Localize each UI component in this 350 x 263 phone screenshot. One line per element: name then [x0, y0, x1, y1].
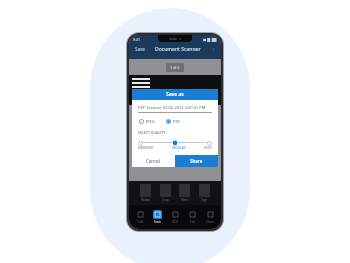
button[interactable]: Quality level: [138, 141, 143, 146]
staticText: Edit: [138, 220, 144, 224]
button[interactable]: Quality level: [207, 141, 212, 146]
button[interactable]: Crop: [159, 183, 172, 203]
button[interactable]: Scan: [151, 209, 164, 225]
staticText: JPEG: [146, 119, 155, 124]
staticText: Document Scanner: [155, 46, 201, 53]
staticText: MINIMUM: [138, 146, 153, 150]
button[interactable]: Filter: [178, 183, 191, 203]
staticText: 1 of 4: [170, 65, 180, 70]
staticText: Scan: [154, 220, 161, 224]
staticText: OCR: [172, 220, 179, 224]
button[interactable]: More options: [210, 46, 216, 52]
button[interactable]: Quality level: [172, 140, 178, 146]
staticText: Rotate: [141, 198, 151, 202]
staticText: 9:41: [133, 37, 140, 42]
staticText: REGULAR: [172, 146, 186, 150]
staticText: Crop: [162, 198, 169, 202]
staticText: SELECT QUALITY: [138, 130, 166, 135]
staticText: Save as: [166, 91, 184, 98]
staticText: Save: [135, 46, 145, 52]
staticText: Cancel: [146, 158, 161, 164]
button[interactable]: Share: [204, 209, 217, 225]
staticText: Sign: [201, 198, 208, 202]
button[interactable]: Edit: [186, 209, 199, 225]
staticText: Share: [206, 220, 215, 224]
staticText: PDF: [173, 119, 181, 124]
staticText: PDF Scanner 02-02-2023 3:50:41 PM: [138, 105, 206, 110]
button[interactable]: PDF: [165, 118, 182, 125]
button[interactable]: Save: [134, 45, 146, 53]
button[interactable]: OCR: [169, 209, 182, 225]
button[interactable]: JPEG: [138, 118, 156, 125]
button[interactable]: Cancel: [132, 155, 175, 167]
staticText: HIGH: [204, 146, 212, 150]
button[interactable]: Share: [175, 155, 218, 167]
staticText: Filter: [181, 198, 189, 202]
button[interactable]: Edit: [134, 209, 147, 225]
staticText: Share: [190, 158, 203, 164]
button[interactable]: Rotate: [139, 183, 152, 203]
staticText: Edit: [190, 220, 196, 224]
button[interactable]: Sign: [198, 183, 211, 203]
